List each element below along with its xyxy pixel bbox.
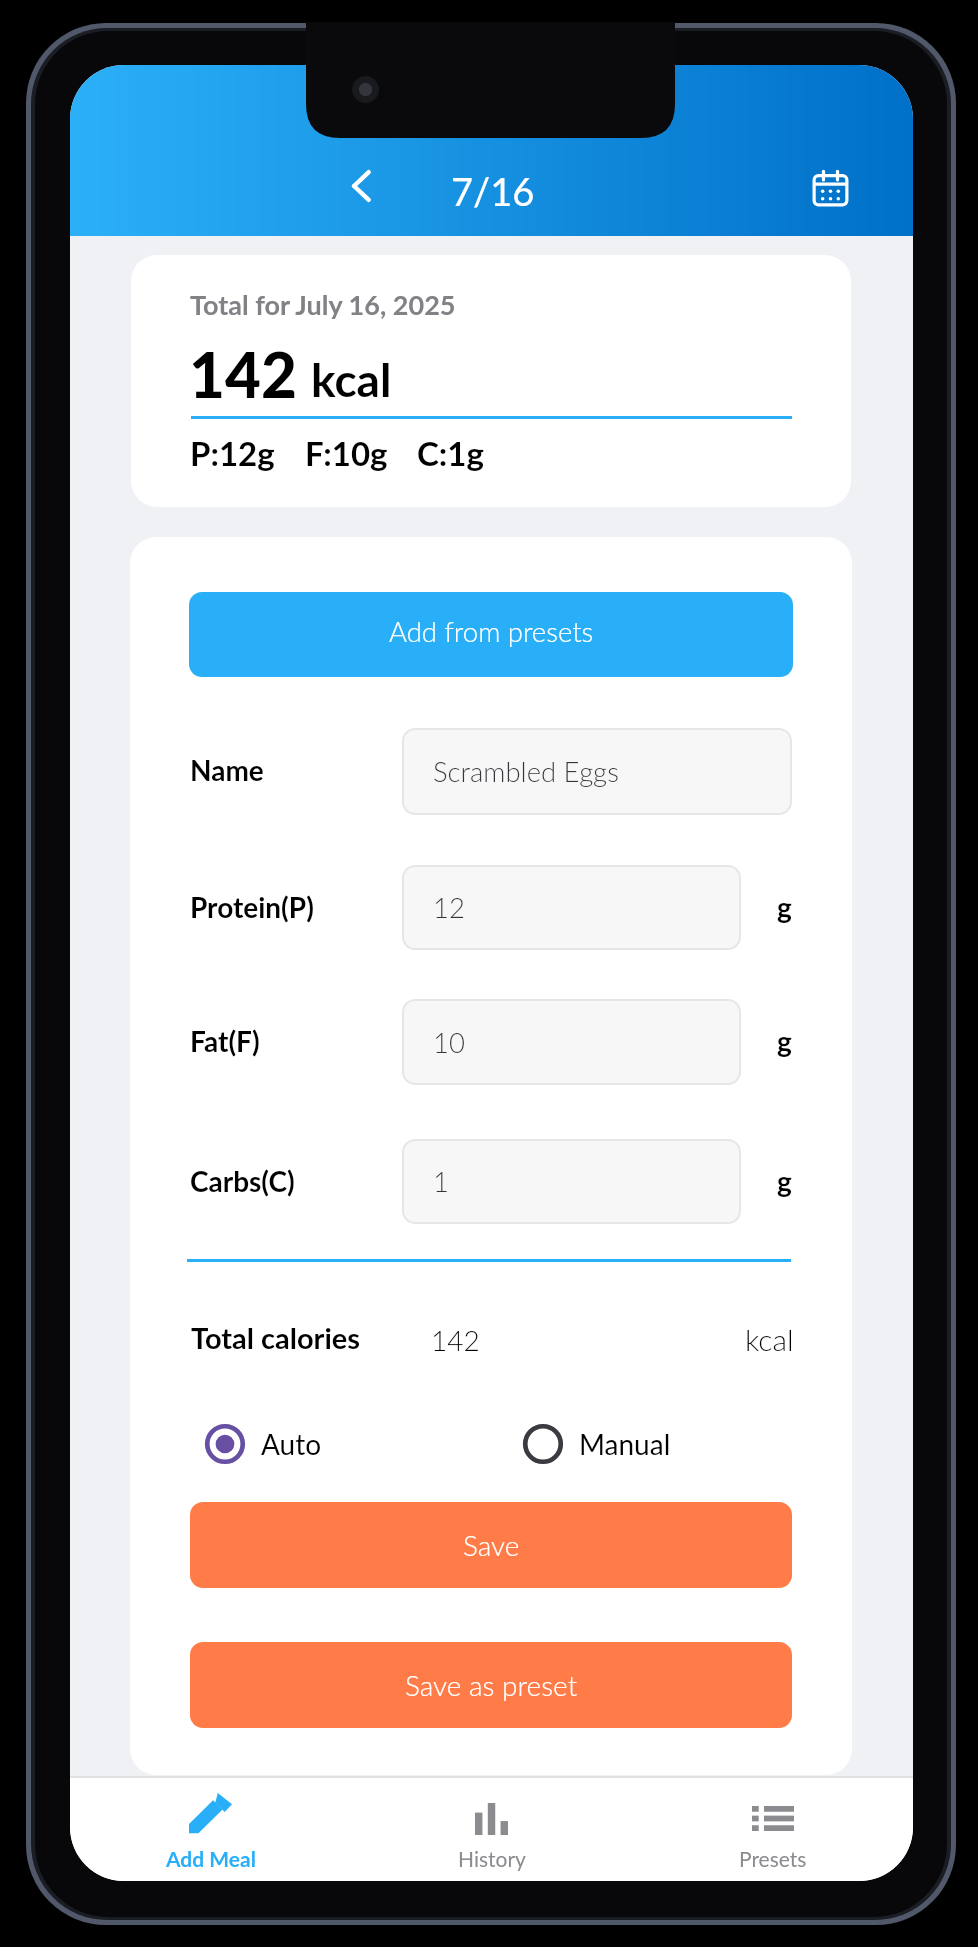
staticText: 12: [433, 891, 465, 924]
button[interactable]: Manual: [521, 1422, 671, 1466]
button[interactable]: Save as preset: [190, 1642, 792, 1728]
button[interactable]: Add Meal: [70, 1776, 351, 1871]
staticText: Add Meal: [166, 1846, 256, 1871]
staticText: Presets: [739, 1846, 807, 1871]
staticText: Manual: [579, 1427, 671, 1461]
staticText: g: [777, 890, 792, 924]
staticText: g: [777, 1024, 792, 1058]
staticText: 142: [189, 337, 297, 411]
staticText: 1: [433, 1165, 449, 1198]
button[interactable]: Back: [333, 157, 391, 215]
staticText: Save as preset: [405, 1668, 578, 1702]
staticText: P:12g: [190, 433, 275, 473]
button[interactable]: Open calendar: [801, 159, 859, 217]
staticText: Add from presets: [389, 615, 594, 648]
staticText: 10: [433, 1026, 465, 1059]
button[interactable]: 10: [402, 999, 741, 1085]
staticText: 142: [431, 1323, 480, 1357]
staticText: Total for July 16, 2025: [190, 288, 456, 320]
staticText: Carbs(C): [190, 1164, 295, 1198]
staticText: Name: [190, 753, 264, 787]
button[interactable]: History: [351, 1776, 632, 1871]
button[interactable]: 12: [402, 865, 741, 950]
staticText: kcal: [311, 352, 392, 407]
staticText: Scrambled Eggs: [433, 755, 619, 788]
button[interactable]: Add from presets: [189, 592, 793, 677]
button[interactable]: Auto: [203, 1422, 322, 1466]
staticText: g: [777, 1164, 792, 1198]
staticText: Total calories: [191, 1320, 361, 1355]
staticText: Fat(F): [190, 1024, 260, 1058]
staticText: History: [458, 1846, 526, 1871]
staticText: kcal: [745, 1321, 794, 1357]
staticText: Save: [463, 1528, 520, 1562]
staticText: C:1g: [417, 433, 484, 473]
button[interactable]: Save: [190, 1502, 792, 1588]
staticText: Protein(P): [190, 890, 314, 924]
button[interactable]: Scrambled Eggs: [402, 728, 792, 815]
staticText: F:10g: [305, 433, 388, 473]
staticText: Auto: [261, 1427, 322, 1461]
button[interactable]: Presets: [632, 1776, 913, 1871]
staticText: 7/16: [451, 168, 535, 214]
button[interactable]: 1: [402, 1139, 741, 1224]
